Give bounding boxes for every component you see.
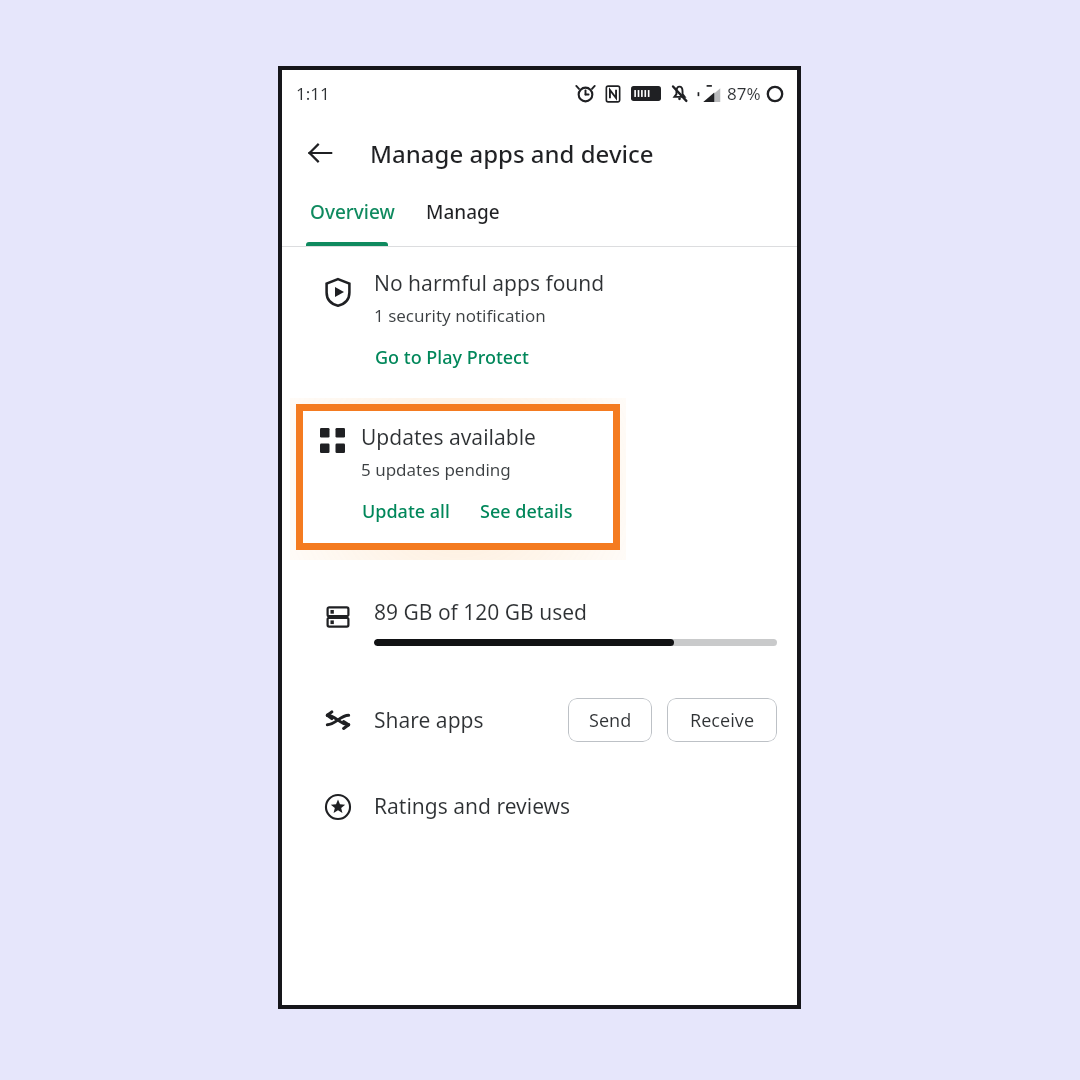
staticText: Ratings and reviews <box>374 792 571 821</box>
staticText: Overview <box>310 199 395 225</box>
staticText: No harmful apps found <box>374 269 605 298</box>
staticText: Updates available <box>361 423 536 452</box>
staticText: 1 security notification <box>374 304 546 327</box>
button[interactable]: No harmful apps found <box>282 263 797 374</box>
button[interactable]: 89 GB of 120 GB used <box>282 594 797 650</box>
button[interactable]: See details <box>479 497 574 526</box>
staticText: Manage apps and device <box>370 137 654 170</box>
staticText: Send <box>589 708 632 733</box>
button[interactable]: Manage <box>420 190 506 246</box>
button[interactable]: Updates available <box>303 411 613 543</box>
staticText: 1:11 <box>296 82 330 105</box>
staticText: Share apps <box>374 706 484 735</box>
button[interactable]: Overview <box>304 190 401 246</box>
staticText: Go to Play Protect <box>375 345 529 370</box>
staticText: Manage <box>426 199 500 225</box>
button[interactable]: Receive <box>667 698 777 742</box>
staticText: 5 updates pending <box>361 458 511 481</box>
button[interactable]: Go to Play Protect <box>374 343 530 372</box>
staticText: Receive <box>690 708 755 733</box>
button[interactable]: Send <box>568 698 652 742</box>
button[interactable]: Update all <box>361 497 451 526</box>
staticText: See details <box>480 499 573 524</box>
staticText: 89 GB of 120 GB used <box>374 598 587 627</box>
button[interactable]: Back <box>298 131 342 175</box>
staticText: 87% <box>727 82 761 105</box>
staticText: Update all <box>362 499 450 524</box>
button[interactable]: Ratings and reviews <box>282 786 797 827</box>
